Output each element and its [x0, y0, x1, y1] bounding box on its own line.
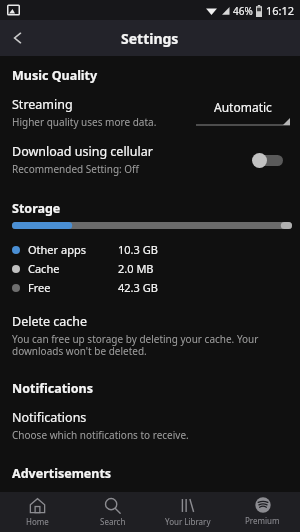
staticText: Choose which notifications to receive.: [12, 428, 189, 442]
staticText: Your Library: [165, 516, 211, 527]
staticText: Delete cache: [12, 313, 88, 330]
button[interactable]: Back: [0, 20, 36, 56]
button[interactable]: Delete cache: [0, 306, 300, 365]
staticText: 2.0 MB: [118, 261, 154, 276]
button[interactable]: Streaming quality: Automatic: [196, 99, 290, 127]
staticText: Settings: [121, 29, 179, 48]
staticText: Storage: [12, 200, 61, 217]
button[interactable]: Download using cellular: [0, 136, 300, 183]
staticText: Music Quality: [12, 67, 98, 84]
button[interactable]: Home: [0, 492, 75, 532]
staticText: Home: [26, 516, 49, 527]
staticText: 46%: [233, 4, 253, 18]
staticText: Notifications: [12, 409, 87, 426]
staticText: Advertisements: [12, 465, 112, 482]
button[interactable]: Search: [75, 492, 150, 532]
staticText: Automatic: [214, 99, 272, 115]
staticText: Other apps: [28, 242, 118, 257]
button[interactable]: Premium: [225, 492, 300, 532]
staticText: Free: [28, 280, 118, 295]
staticText: 42.3 GB: [118, 280, 158, 295]
staticText: Premium: [245, 515, 280, 526]
staticText: 16:12: [266, 3, 295, 18]
staticText: Recommended Setting: Off: [12, 162, 139, 176]
button[interactable]: Download using cellular toggle, off: [250, 149, 290, 171]
button[interactable]: Your Library: [150, 492, 225, 532]
staticText: 10.3 GB: [118, 242, 158, 257]
staticText: You can free up storage by deleting your…: [12, 332, 259, 358]
staticText: Download using cellular: [12, 143, 153, 160]
staticText: Higher quality uses more data.: [12, 115, 157, 129]
staticText: Streaming: [12, 96, 73, 113]
staticText: Notifications: [12, 380, 94, 397]
staticText: Cache: [28, 261, 118, 276]
button[interactable]: Streaming: [0, 89, 300, 136]
button[interactable]: Notifications: [0, 402, 300, 449]
staticText: Search: [100, 516, 126, 527]
